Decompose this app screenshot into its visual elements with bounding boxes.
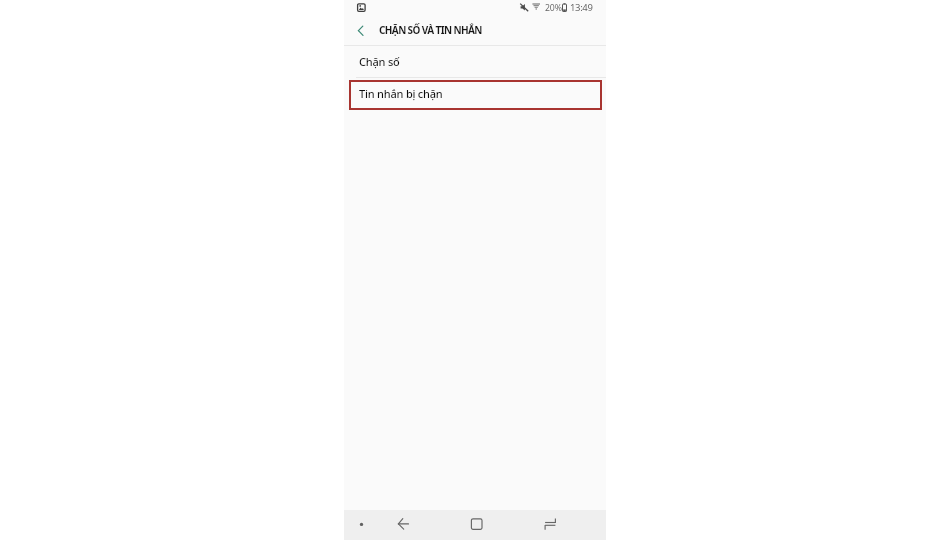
staticText: 13:49 (570, 1, 593, 14)
staticText: 20% (545, 2, 562, 14)
button[interactable]: Back (386, 510, 412, 538)
button[interactable]: Home (459, 510, 485, 538)
button[interactable]: Recent apps (533, 510, 559, 538)
button[interactable]: Tin nhắn bị chặn (344, 78, 606, 109)
button[interactable]: Navigate up (344, 15, 374, 45)
button[interactable]: Show hidden buttons (349, 510, 373, 538)
staticText: CHẶN SỐ VÀ TIN NHẮN (379, 23, 482, 37)
button[interactable]: Chặn số (344, 46, 606, 77)
staticText: Chặn số (359, 54, 400, 69)
staticText: Tin nhắn bị chặn (359, 86, 443, 101)
